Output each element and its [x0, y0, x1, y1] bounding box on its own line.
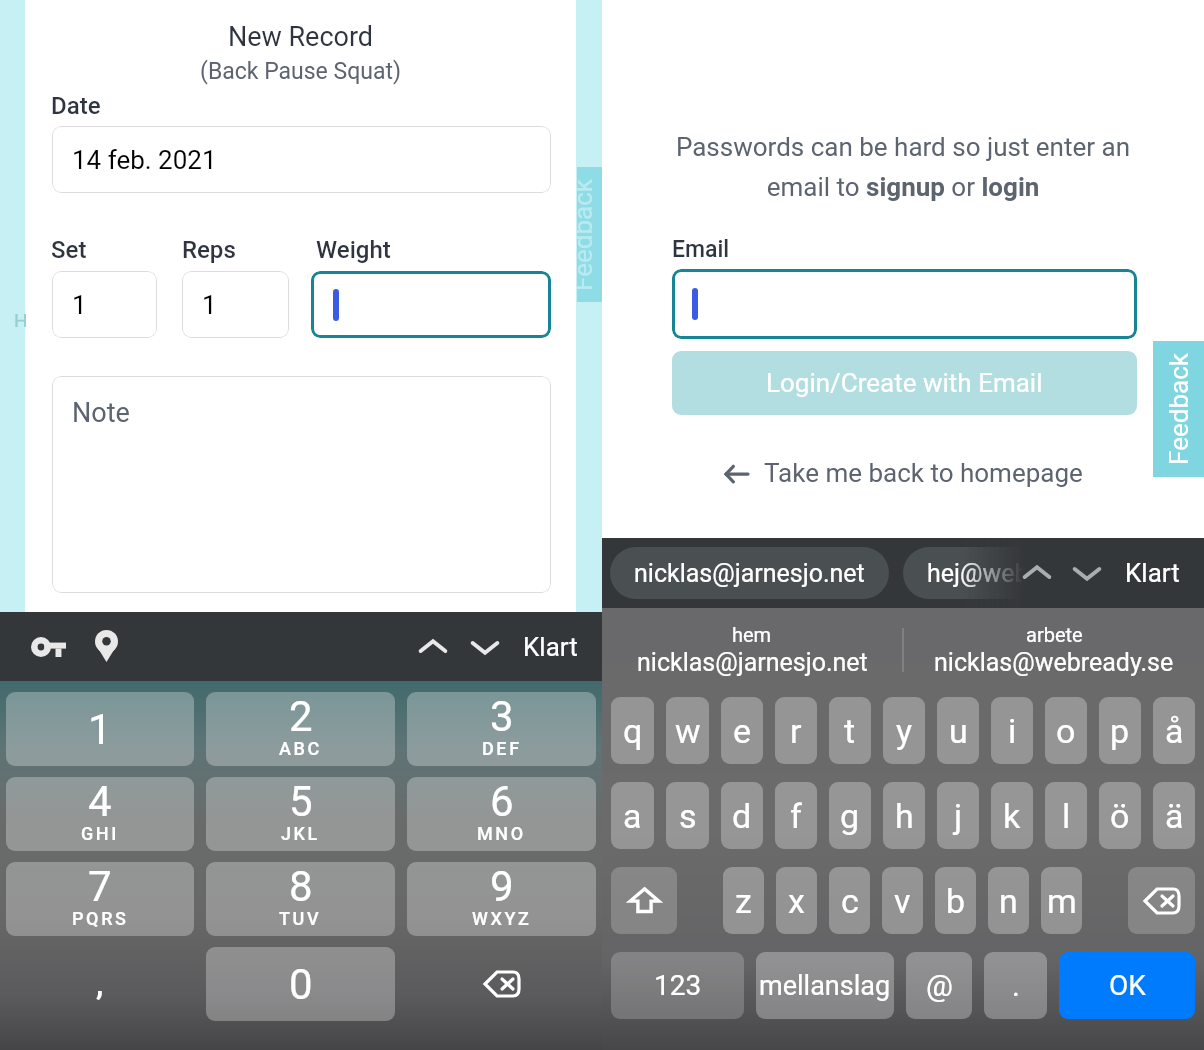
staticText: 123: [654, 969, 702, 1002]
button[interactable]: 7: [6, 862, 194, 936]
staticText: a: [623, 796, 642, 836]
button[interactable]: d: [721, 782, 763, 849]
button[interactable]: 8: [206, 862, 395, 936]
button[interactable]: Location: [95, 630, 118, 662]
button[interactable]: Next field: [1065, 551, 1109, 595]
button[interactable]: w: [666, 697, 709, 764]
staticText: 8: [289, 862, 313, 911]
button[interactable]: q: [611, 697, 654, 764]
button[interactable]: f: [775, 782, 817, 849]
button[interactable]: 14 feb. 2021: [52, 126, 551, 193]
button[interactable]: t: [829, 697, 871, 764]
button[interactable]: r: [775, 697, 817, 764]
button[interactable]: @: [906, 952, 972, 1019]
staticText: 1: [88, 705, 112, 754]
button[interactable]: h: [883, 782, 925, 849]
button[interactable]: Backspace: [1128, 867, 1195, 934]
button[interactable]: nicklas@jarnesjo.net: [610, 547, 889, 599]
button[interactable]: Klart: [1125, 558, 1180, 588]
button[interactable]: OK: [1059, 952, 1195, 1019]
button[interactable]: e: [721, 697, 763, 764]
button[interactable]: 0: [206, 947, 395, 1021]
staticText: 5: [289, 777, 313, 826]
button[interactable]: 6: [407, 777, 596, 851]
button[interactable]: ä: [1153, 782, 1195, 849]
button[interactable]: Klart: [523, 632, 578, 662]
button[interactable]: g: [829, 782, 871, 849]
staticText: Reps: [182, 236, 236, 264]
button[interactable]: Login/Create with Email: [672, 351, 1137, 415]
staticText: x: [788, 881, 805, 921]
button[interactable]: m: [1041, 867, 1082, 934]
staticText: Date: [51, 92, 101, 120]
button[interactable]: Feedback: [1153, 341, 1204, 477]
button[interactable]: [672, 269, 1137, 339]
button[interactable]: mellanslag: [756, 952, 894, 1019]
button[interactable]: 1: [6, 692, 194, 766]
button[interactable]: c: [829, 867, 870, 934]
staticText: Passwords can be hard so just enter an: [602, 132, 1204, 162]
button[interactable]: l: [1045, 782, 1087, 849]
button[interactable]: [311, 271, 551, 338]
button[interactable]: Feedback: [577, 167, 602, 302]
button[interactable]: ,: [0, 947, 200, 1021]
staticText: 14 feb. 2021: [72, 145, 217, 175]
button[interactable]: 3: [407, 692, 596, 766]
button[interactable]: hej@webready.se: [903, 547, 1146, 599]
staticText: 3: [490, 692, 514, 741]
button[interactable]: ö: [1099, 782, 1141, 849]
staticText: ,: [96, 967, 104, 1002]
button[interactable]: Next field: [463, 625, 507, 669]
button[interactable]: y: [883, 697, 925, 764]
button[interactable]: z: [723, 867, 764, 934]
staticText: f: [790, 796, 802, 836]
button[interactable]: 1: [182, 271, 289, 338]
staticText: hem: [732, 623, 772, 646]
button[interactable]: Shift: [611, 867, 677, 934]
button[interactable]: .: [984, 952, 1047, 1019]
button[interactable]: Previous field: [411, 625, 455, 669]
button[interactable]: Note: [52, 376, 551, 593]
staticText: Take me back to homepage: [764, 458, 1083, 488]
staticText: hej@webready.se: [927, 559, 1122, 588]
button[interactable]: b: [935, 867, 976, 934]
staticText: v: [894, 881, 911, 921]
button[interactable]: j: [937, 782, 979, 849]
button[interactable]: Backspace: [401, 947, 602, 1021]
staticText: DEF: [482, 738, 522, 759]
button[interactable]: p: [1099, 697, 1141, 764]
button[interactable]: x: [776, 867, 817, 934]
staticText: ABC: [279, 738, 322, 759]
staticText: 1: [72, 290, 87, 320]
staticText: y: [896, 711, 913, 751]
staticText: Email: [672, 236, 730, 263]
staticText: (Back Pause Squat): [25, 58, 576, 85]
button[interactable]: i: [991, 697, 1033, 764]
staticText: 6: [490, 777, 514, 826]
staticText: PQRS: [72, 908, 129, 929]
staticText: r: [790, 711, 802, 751]
staticText: MNO: [477, 823, 526, 844]
button[interactable]: u: [937, 697, 979, 764]
staticText: q: [623, 711, 643, 751]
button[interactable]: o: [1045, 697, 1087, 764]
button[interactable]: a: [611, 782, 654, 849]
staticText: s: [679, 796, 697, 836]
button[interactable]: 2: [206, 692, 395, 766]
button[interactable]: k: [991, 782, 1033, 849]
button[interactable]: 4: [6, 777, 194, 851]
button[interactable]: s: [666, 782, 709, 849]
staticText: OK: [1109, 969, 1146, 1002]
staticText: nicklas@jarnesjo.net: [634, 559, 865, 588]
button[interactable]: Password: [31, 637, 66, 657]
button[interactable]: Previous field: [1015, 551, 1059, 595]
button[interactable]: 1: [52, 271, 157, 338]
button[interactable]: n: [988, 867, 1029, 934]
staticText: JKL: [281, 823, 320, 844]
button[interactable]: å: [1153, 697, 1195, 764]
button[interactable]: 123: [611, 952, 744, 1019]
button[interactable]: 5: [206, 777, 395, 851]
button[interactable]: 9: [407, 862, 596, 936]
button[interactable]: v: [882, 867, 923, 934]
button[interactable]: Take me back to homepage: [602, 458, 1204, 488]
